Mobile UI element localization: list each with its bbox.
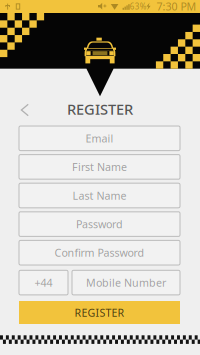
button[interactable]: Confirm Password bbox=[19, 240, 180, 265]
staticText: 7:30 PM bbox=[156, 0, 196, 13]
button[interactable]: Password bbox=[19, 212, 180, 236]
button[interactable]: Email bbox=[19, 126, 180, 151]
button[interactable]: REGISTER bbox=[19, 301, 180, 324]
staticText: Last Name bbox=[72, 188, 126, 203]
button[interactable]: +44 bbox=[19, 270, 68, 295]
button[interactable]: Mobile Number bbox=[72, 270, 180, 295]
button[interactable]: Back bbox=[0, 0, 200, 355]
staticText: Email bbox=[85, 131, 113, 145]
button[interactable]: Last Name bbox=[19, 183, 180, 208]
staticText: +44 bbox=[34, 275, 52, 290]
staticText: Password bbox=[76, 217, 123, 231]
staticText: REGISTER bbox=[67, 99, 133, 119]
staticText: REGISTER bbox=[74, 305, 124, 320]
staticText: First Name bbox=[72, 160, 127, 174]
button[interactable]: First Name bbox=[19, 155, 180, 179]
staticText: Confirm Password bbox=[54, 246, 144, 260]
staticText: 63% bbox=[130, 1, 147, 12]
staticText: Mobile Number bbox=[86, 275, 166, 290]
